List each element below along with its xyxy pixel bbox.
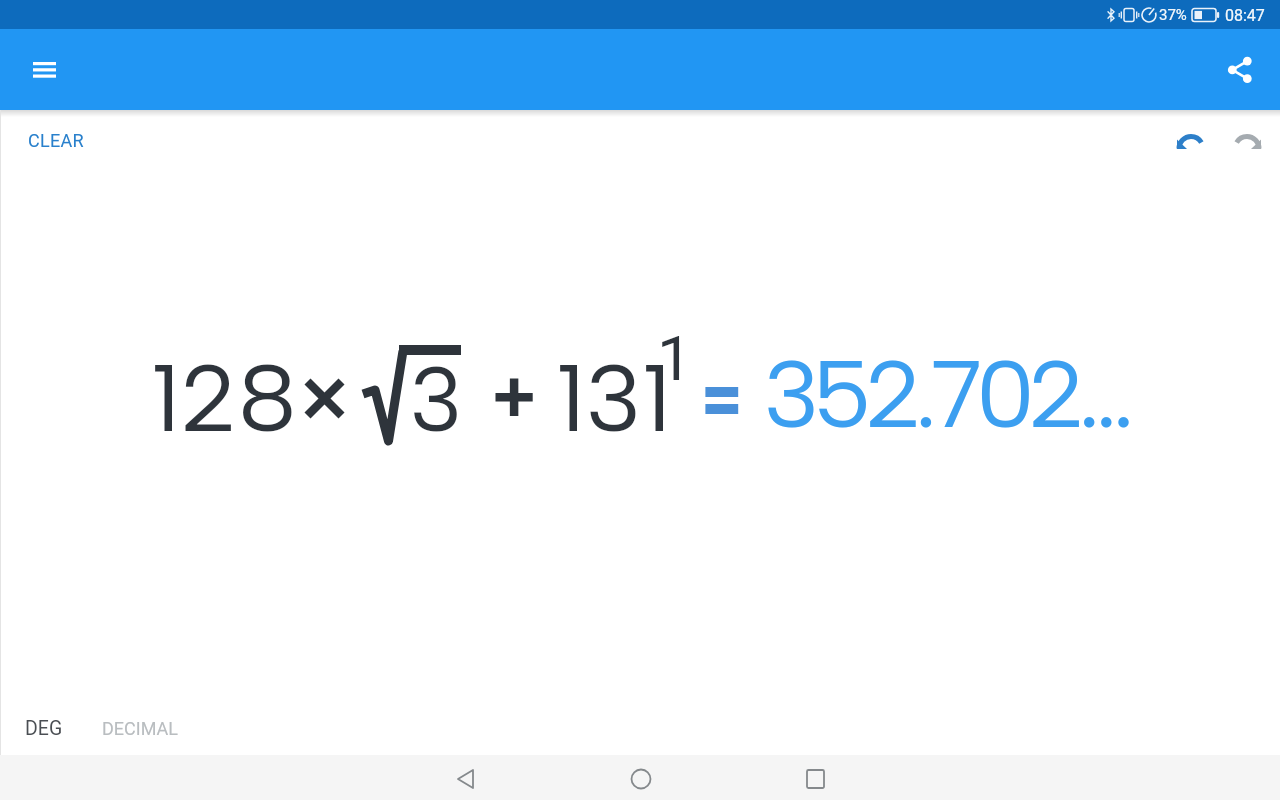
staticText: 352.702…: [763, 337, 1128, 451]
button[interactable]: [1216, 46, 1264, 94]
button[interactable]: CLEAR: [14, 122, 98, 159]
staticText: CLEAR: [28, 130, 84, 151]
button[interactable]: [605, 755, 675, 800]
staticText: DECIMAL: [102, 718, 178, 739]
button[interactable]: [780, 755, 850, 800]
staticText: DEG: [25, 717, 63, 740]
staticText: 37%: [1159, 6, 1187, 24]
button[interactable]: DEG: [11, 709, 77, 748]
button[interactable]: [1172, 126, 1208, 162]
button[interactable]: [1230, 126, 1266, 162]
staticText: 3: [409, 345, 463, 453]
button[interactable]: [430, 755, 500, 800]
staticText: 131: [556, 341, 672, 455]
staticText: 128: [151, 341, 298, 455]
button[interactable]: DECIMAL: [88, 710, 192, 747]
staticText: 1: [657, 322, 692, 395]
staticText: 08:47: [1225, 6, 1265, 25]
button[interactable]: [21, 46, 69, 94]
